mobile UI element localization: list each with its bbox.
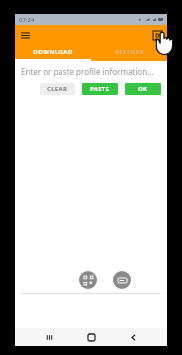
staticText: Enter or paste profile information... — [21, 66, 154, 77]
button[interactable]: Import from file — [113, 271, 131, 289]
button[interactable]: Settings — [149, 27, 165, 43]
staticText: PASTE — [90, 85, 110, 93]
staticText: DOWNLOAD — [33, 48, 73, 56]
staticText: HISTORY — [115, 48, 144, 56]
staticText: OK — [138, 85, 148, 93]
staticText: 07:24 — [19, 16, 35, 24]
button[interactable]: Home — [83, 329, 99, 345]
button[interactable]: OK — [125, 83, 161, 95]
button[interactable]: Back — [125, 329, 141, 345]
button[interactable]: DOWNLOAD — [15, 45, 91, 59]
button[interactable]: Menu — [17, 27, 33, 43]
button[interactable]: HISTORY — [91, 45, 167, 59]
button[interactable]: PASTE — [82, 83, 118, 95]
staticText: CLEAR — [47, 85, 68, 93]
button[interactable]: Recents — [41, 329, 57, 345]
button[interactable]: Scan QR code — [79, 271, 97, 289]
button[interactable]: CLEAR — [40, 83, 75, 95]
